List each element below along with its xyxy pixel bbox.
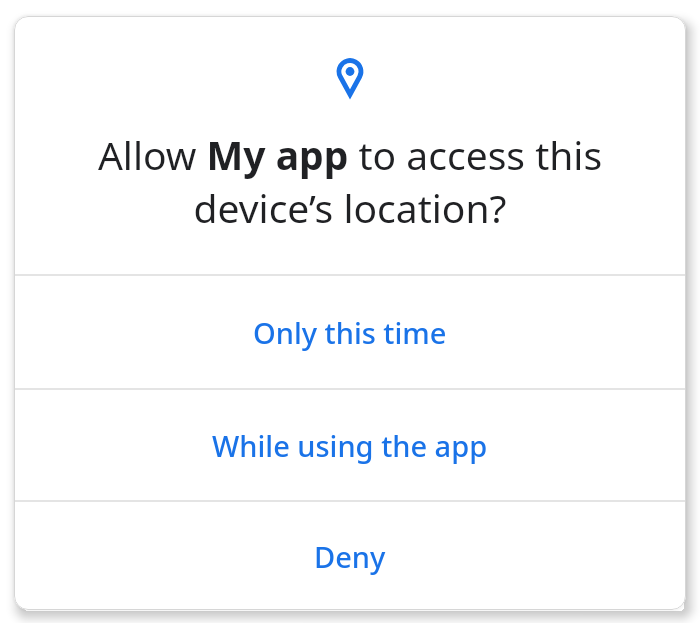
staticText: Only this time [253, 313, 447, 352]
staticText: While using the app [212, 426, 488, 465]
staticText: Allow My app to access this device’s loc… [14, 128, 686, 235]
button[interactable]: While using the app [14, 390, 686, 500]
staticText: Deny [314, 537, 386, 576]
button[interactable]: Only this time [14, 276, 686, 388]
button[interactable]: Deny [14, 502, 686, 610]
